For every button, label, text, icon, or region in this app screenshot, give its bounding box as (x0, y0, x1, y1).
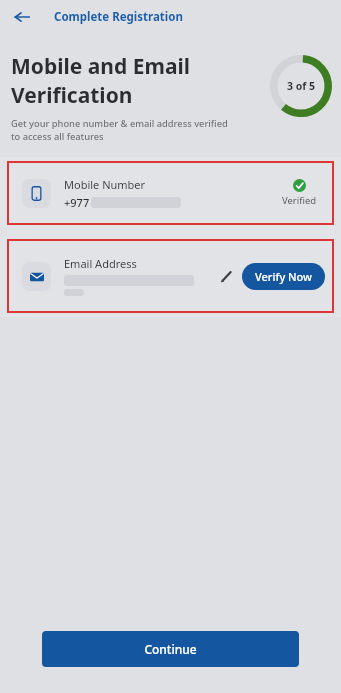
button[interactable]: Verify Now (242, 263, 325, 290)
button[interactable]: Mobile Number (7, 161, 334, 225)
staticText: Get your phone number & email address ve… (11, 117, 228, 143)
staticText: Email Address (64, 256, 137, 271)
staticText: Mobile Number (64, 177, 146, 192)
staticText: Mobile and Email (11, 52, 191, 81)
staticText: Verified (282, 194, 317, 207)
staticText: Complete Registration (54, 9, 183, 25)
staticText: +977 (64, 195, 90, 210)
staticText: 3 of 5 (287, 79, 316, 93)
button[interactable]: Back (7, 2, 37, 32)
staticText: Verify Now (255, 269, 312, 284)
staticText: Continue (144, 641, 197, 657)
button[interactable]: Continue (42, 631, 299, 667)
staticText: Verification (11, 81, 133, 110)
button[interactable]: Edit email address (213, 263, 239, 289)
button[interactable]: Email Address (7, 239, 334, 313)
